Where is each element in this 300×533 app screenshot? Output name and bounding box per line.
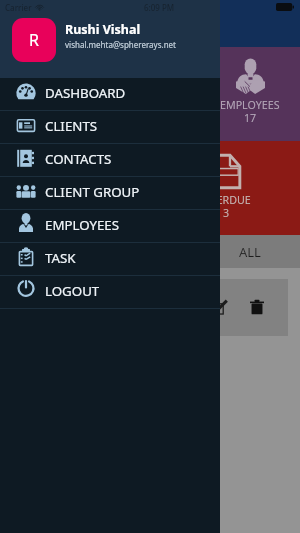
button[interactable]: CLIENTS [0,111,220,144]
staticText: EMPLOYEES [220,98,280,113]
button[interactable]: DASHBOARD [0,78,220,111]
button[interactable]: Delete [241,291,273,323]
staticText: 6:09 PM [144,2,175,13]
staticText: OVERDUE [202,193,251,208]
staticText: EMPLOYEES [45,216,120,234]
staticText: Rushi Vishal [65,21,141,38]
staticText: CONTACTS [45,150,112,168]
staticText: LOGOUT [45,282,100,300]
button[interactable]: ALL [200,235,300,268]
button[interactable]: EMPLOYEES [0,210,220,243]
staticText: CLIENTS [45,117,98,135]
button[interactable]: R [12,18,56,62]
button[interactable]: EMPLOYEES [0,47,300,141]
button[interactable]: CLIENT GROUP [0,177,220,210]
staticText: OPEN [32,243,68,261]
button[interactable]: CLOSED [100,235,200,268]
staticText: ALL [239,243,261,261]
button[interactable]: TASK [0,243,220,276]
staticText: DASHBOARD [45,84,126,102]
button[interactable]: Edit [204,291,236,323]
staticText: 3 [223,206,230,221]
button[interactable]: Edit [12,279,288,336]
button[interactable]: OPEN [0,235,100,268]
button[interactable]: CONTACTS [0,144,220,177]
staticText: R [29,29,39,51]
staticText: 17 [244,111,257,126]
button[interactable]: LOGOUT [0,276,220,309]
staticText: CLIENT GROUP [45,183,140,201]
staticText: Carrier [5,2,32,13]
staticText: vishal.mehta@sphererays.net [65,39,176,50]
button[interactable]: OVERDUE [0,141,300,235]
staticText: TASK [45,249,76,267]
